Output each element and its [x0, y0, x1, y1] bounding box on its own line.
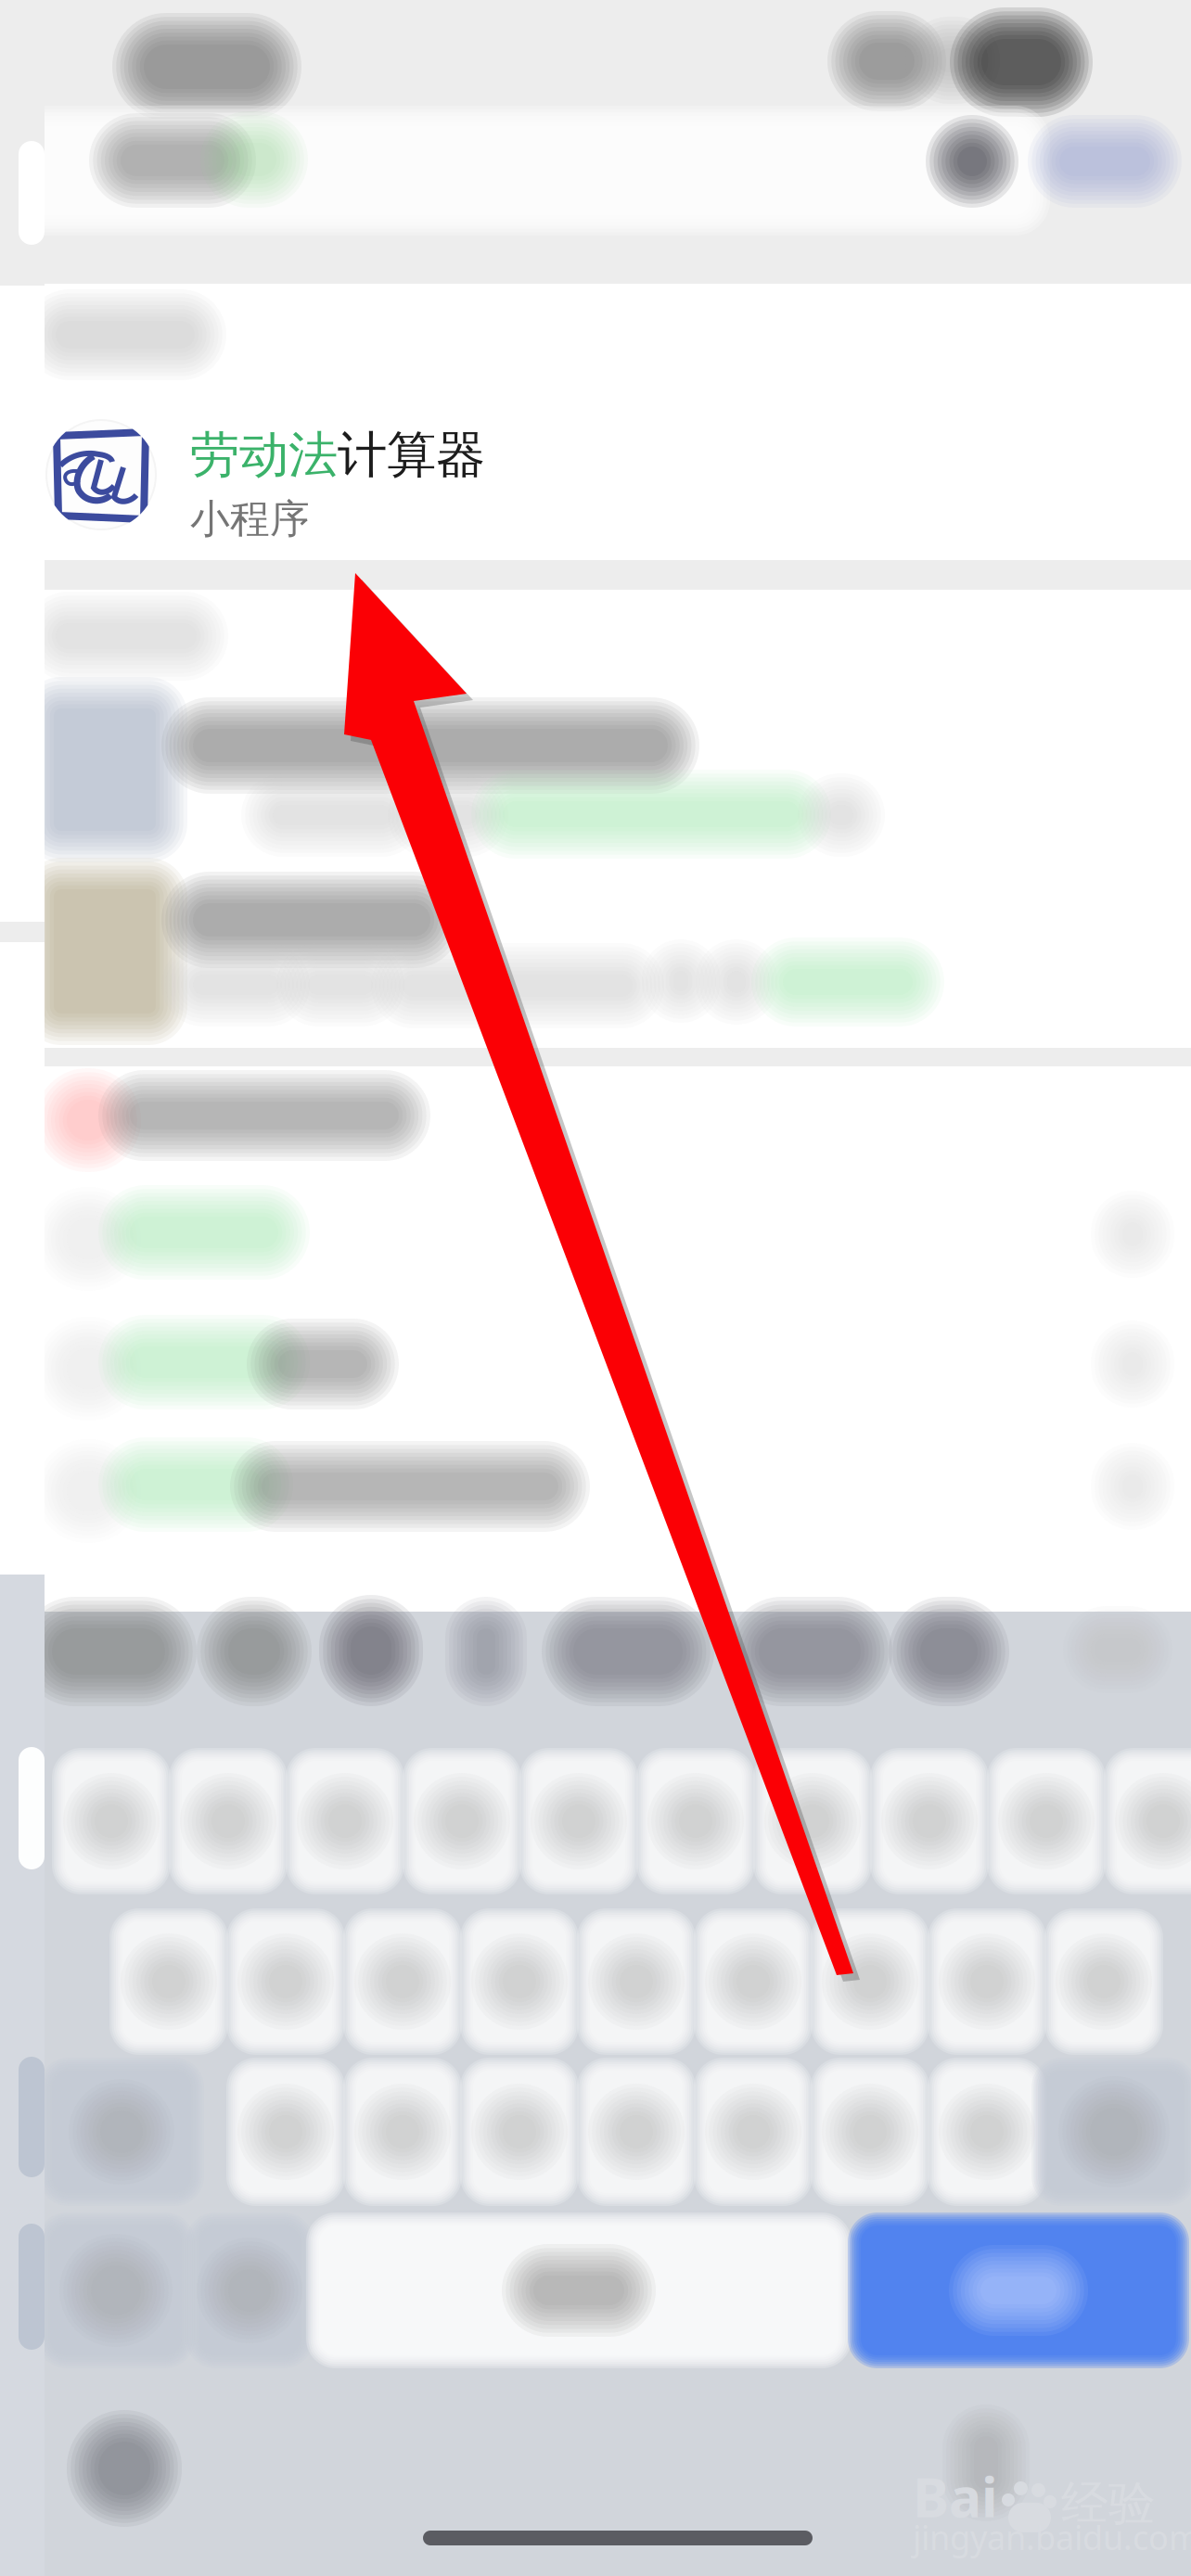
button[interactable] [45, 1315, 1191, 1435]
button[interactable] [45, 771, 1191, 937]
staticText: 小程序 [190, 495, 310, 543]
button[interactable] [45, 1437, 1191, 1558]
button[interactable]: 劳动法 [45, 284, 1191, 560]
button[interactable]: 取消 [45, 119, 1191, 243]
staticText: 劳动法 [190, 425, 338, 485]
button[interactable] [45, 1066, 1191, 1187]
staticText: 计算器 [338, 425, 485, 485]
button[interactable] [45, 1185, 1191, 1306]
button[interactable] [45, 590, 1191, 766]
staticText: Bai [913, 2460, 998, 2532]
